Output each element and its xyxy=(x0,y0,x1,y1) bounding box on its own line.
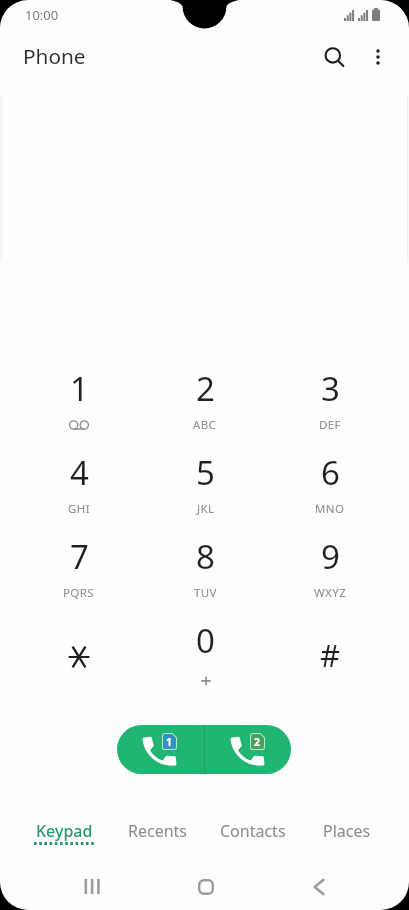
staticText: 6 xyxy=(321,450,340,495)
button[interactable]: 1 xyxy=(16,355,142,439)
staticText: 1 xyxy=(166,735,173,749)
staticText: 4 xyxy=(70,450,89,495)
button[interactable]: Call with SIM 2 xyxy=(205,725,291,774)
button[interactable]: Back xyxy=(296,863,343,910)
staticText: 1 xyxy=(70,366,89,411)
staticText: DEF xyxy=(319,417,341,433)
button[interactable]: Recent apps xyxy=(68,863,115,910)
staticText: Phone xyxy=(23,42,86,70)
button[interactable]: 8 xyxy=(142,523,268,607)
staticText: GHI xyxy=(68,501,90,517)
button[interactable]: 3 xyxy=(267,355,393,439)
staticText: 8 xyxy=(196,534,215,579)
button[interactable]: Search xyxy=(311,34,357,80)
staticText: 5 xyxy=(196,450,215,495)
button[interactable]: Recents xyxy=(110,806,206,852)
button[interactable]: Contacts xyxy=(205,806,301,852)
staticText: Places xyxy=(323,820,371,842)
staticText: 0 xyxy=(196,618,215,663)
button[interactable]: 4 xyxy=(16,439,142,523)
staticText: # xyxy=(320,634,341,676)
button[interactable]: Call with SIM 1 xyxy=(117,725,204,774)
staticText: WXYZ xyxy=(314,585,347,601)
button[interactable]: Home xyxy=(182,863,229,910)
button[interactable] xyxy=(16,607,142,691)
staticText: Keypad xyxy=(36,820,93,842)
button[interactable]: 0 xyxy=(142,607,268,691)
button[interactable]: 7 xyxy=(16,523,142,607)
staticText: MNO xyxy=(315,501,345,517)
button[interactable]: Places xyxy=(299,806,395,852)
staticText: 9 xyxy=(321,534,340,579)
staticText: ABC xyxy=(193,417,217,433)
button[interactable]: # xyxy=(267,607,393,691)
button[interactable]: 9 xyxy=(267,523,393,607)
staticText: Contacts xyxy=(220,820,286,842)
button[interactable]: 2 xyxy=(142,355,268,439)
staticText: 2 xyxy=(254,735,261,749)
staticText: 10:00 xyxy=(25,6,59,24)
button[interactable]: 5 xyxy=(142,439,268,523)
staticText: 3 xyxy=(321,366,340,411)
button[interactable]: 6 xyxy=(267,439,393,523)
staticText: 7 xyxy=(70,534,89,579)
staticText: TUV xyxy=(194,585,217,601)
staticText: PQRS xyxy=(63,585,95,601)
staticText: 2 xyxy=(196,366,215,411)
button[interactable]: Keypad xyxy=(16,806,112,852)
staticText: Recents xyxy=(128,820,188,842)
button[interactable]: More options xyxy=(355,34,401,80)
staticText: JKL xyxy=(197,501,215,517)
